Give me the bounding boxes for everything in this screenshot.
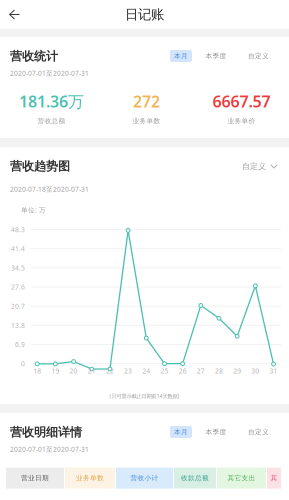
staticText: 业务单数 [132, 117, 160, 125]
staticText: 2020-07-01至2020-07-31 [10, 445, 89, 454]
staticText: 20.7 [11, 302, 25, 311]
staticText: 营收小计 [130, 474, 158, 482]
button[interactable]: 本月 [170, 426, 192, 438]
staticText: 2020-07-01至2020-07-31 [10, 69, 89, 78]
staticText: 21 [88, 366, 96, 375]
staticText: 6.9 [15, 340, 25, 349]
staticText: 业务单价 [227, 117, 255, 125]
staticText: 34.5 [11, 263, 25, 272]
staticText: 收款总额 [181, 474, 209, 482]
staticText: 29 [233, 366, 241, 375]
staticText: 本季度 [205, 428, 226, 436]
staticText: (只可显示截止日期前14天数据) [109, 392, 179, 399]
staticText: 单位: 万 [21, 206, 46, 214]
staticText: 18 [33, 366, 41, 375]
staticText: 日记账 [125, 6, 164, 23]
staticText: 41.4 [11, 244, 25, 253]
staticText: 19 [51, 366, 59, 375]
staticText: 营收趋势图 [10, 159, 70, 174]
staticText: 6667.57 [212, 91, 270, 112]
staticText: 23 [124, 366, 132, 375]
staticText: 48.3 [11, 225, 25, 234]
staticText: 2020-07-18至2020-07-31 [10, 185, 89, 194]
button[interactable]: Back [0, 2, 29, 26]
staticText: 272 [133, 91, 160, 112]
staticText: 24 [142, 366, 150, 375]
staticText: 27 [197, 366, 205, 375]
button[interactable]: 本月 [170, 50, 192, 62]
staticText: 22 [106, 366, 114, 375]
staticText: 本月 [174, 52, 188, 60]
staticText: 本月 [174, 428, 188, 436]
staticText: 25 [160, 366, 168, 375]
button[interactable]: 自定义 [240, 50, 277, 62]
staticText: 31 [269, 366, 277, 375]
staticText: 自定义 [242, 161, 266, 171]
staticText: 181.36万 [19, 91, 84, 112]
staticText: 自定义 [248, 428, 269, 436]
staticText: 0 [21, 359, 25, 368]
staticText: 其 [270, 474, 277, 482]
staticText: 营收总额 [37, 117, 65, 125]
staticText: 营业日期 [21, 474, 49, 482]
staticText: 业务单数 [76, 474, 104, 482]
staticText: 13.8 [11, 321, 25, 330]
staticText: 自定义 [248, 52, 269, 60]
staticText: 20 [70, 366, 78, 375]
staticText: 营收统计 [10, 49, 58, 64]
staticText: 本季度 [205, 52, 226, 60]
button[interactable]: 自定义 [240, 426, 277, 438]
staticText: 27.6 [11, 283, 25, 291]
staticText: 26 [179, 366, 187, 375]
button[interactable]: 本季度 [192, 50, 240, 62]
staticText: 其它支出 [227, 474, 255, 482]
button[interactable]: 自定义 [242, 161, 278, 171]
button[interactable]: 本季度 [192, 426, 240, 438]
staticText: 30 [251, 366, 259, 375]
staticText: 营收明细详情 [10, 425, 82, 440]
staticText: 28 [215, 366, 223, 375]
